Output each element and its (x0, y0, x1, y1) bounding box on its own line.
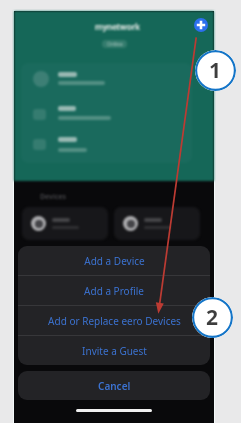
button[interactable]: Add a Profile (18, 276, 210, 305)
staticText: 2 (206, 303, 219, 332)
staticText: Add or Replace eero Devices (48, 314, 181, 328)
staticText: Devices (40, 192, 66, 202)
button[interactable]: Cancel (18, 371, 210, 400)
button[interactable]: Step 2 (192, 297, 233, 338)
staticText: Add a Profile (84, 284, 144, 298)
staticText: 1 (209, 56, 222, 85)
staticText: mynetwork (95, 21, 140, 32)
staticText: Add a Device (84, 254, 145, 268)
staticText: Cancel (98, 379, 131, 393)
staticText: Online (107, 41, 123, 48)
button[interactable]: Step 1 (195, 50, 236, 91)
button[interactable]: Add or Replace eero Devices (18, 306, 210, 335)
staticText: Invite a Guest (82, 344, 147, 358)
button[interactable]: Add (194, 18, 208, 32)
button[interactable]: Invite a Guest (18, 336, 210, 365)
button[interactable]: Add a Device (18, 246, 210, 275)
